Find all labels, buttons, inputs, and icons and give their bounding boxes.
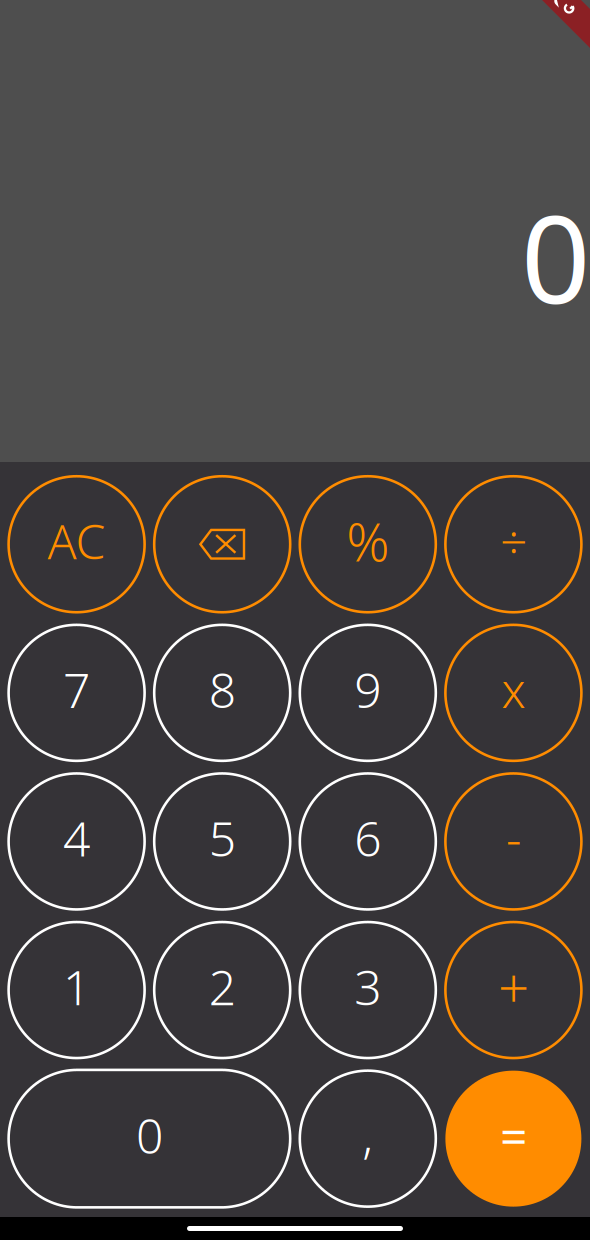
button[interactable]: 4 <box>9 773 145 910</box>
staticText: 0 <box>521 176 590 337</box>
staticText: x <box>501 657 525 721</box>
button[interactable]: Backspace <box>154 475 290 613</box>
staticText: 5 <box>209 806 236 870</box>
button[interactable]: + <box>445 921 581 1059</box>
button[interactable]: 8 <box>154 624 290 762</box>
staticText: 0 <box>136 1103 163 1167</box>
staticText: , <box>362 1103 373 1167</box>
staticText: 9 <box>354 657 381 721</box>
button[interactable]: ÷ <box>445 475 581 613</box>
staticText: 1 <box>63 955 90 1018</box>
button[interactable]: AC <box>9 475 145 613</box>
staticText: + <box>498 950 529 1023</box>
button[interactable]: 9 <box>300 624 436 762</box>
button[interactable]: - <box>445 773 581 910</box>
button[interactable]: % <box>300 475 436 613</box>
button[interactable]: , <box>300 1070 436 1207</box>
button[interactable]: Equals <box>445 1070 581 1207</box>
staticText: % <box>346 505 389 576</box>
button[interactable]: 7 <box>9 624 145 762</box>
button[interactable]: 1 <box>9 921 145 1059</box>
staticText: 8 <box>209 657 236 721</box>
staticText: - <box>506 806 521 870</box>
button[interactable]: 0 <box>9 1070 290 1207</box>
button[interactable]: 3 <box>300 921 436 1059</box>
button[interactable]: 6 <box>300 773 436 910</box>
button[interactable]: x <box>445 624 581 762</box>
button[interactable]: 2 <box>154 921 290 1059</box>
button[interactable]: 5 <box>154 773 290 910</box>
staticText: 7 <box>63 657 90 721</box>
staticText: = <box>500 1103 527 1167</box>
staticText: 2 <box>209 955 236 1018</box>
staticText: 4 <box>63 806 90 870</box>
staticText: ÷ <box>500 509 527 573</box>
staticText: 6 <box>354 806 381 870</box>
staticText: AC <box>48 509 106 573</box>
staticText: 3 <box>354 955 381 1018</box>
